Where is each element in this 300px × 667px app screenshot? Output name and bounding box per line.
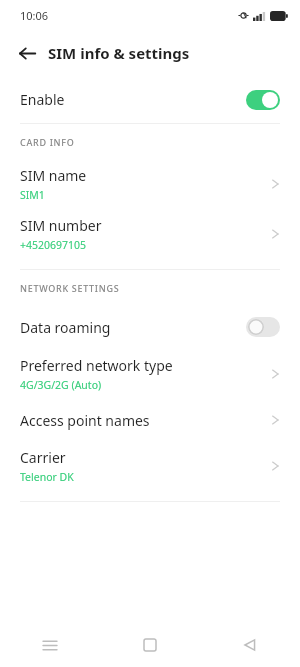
button[interactable]: Recent apps [0,623,100,667]
button[interactable]: Data roaming toggle, off [246,317,280,337]
staticText: SIM name [20,166,87,185]
button[interactable]: Back [200,623,300,667]
staticText: CARD INFO [20,136,75,148]
button[interactable]: Enable [0,76,300,123]
staticText: SIM1 [20,188,45,202]
staticText: NETWORK SETTINGS [20,282,120,294]
button[interactable]: SIM number [0,209,300,259]
staticText: Data roaming [20,318,111,337]
button[interactable]: Data roaming [0,305,300,349]
staticText: +4520697105 [20,238,87,252]
button[interactable]: Enable toggle, on [246,90,280,110]
staticText: SIM info & settings [48,43,190,63]
button[interactable]: Preferred network type [0,349,300,399]
button[interactable]: SIM name [0,159,300,209]
button[interactable]: Access point names [0,399,300,441]
button[interactable]: Back [13,39,41,67]
button[interactable]: Home [100,623,200,667]
staticText: Carrier [20,448,66,467]
staticText: 10:06 [20,8,49,23]
button[interactable]: Carrier [0,441,300,491]
staticText: 4G/3G/2G (Auto) [20,378,102,392]
staticText: SIM number [20,216,102,235]
staticText: Access point names [20,411,150,430]
staticText: Preferred network type [20,356,173,375]
staticText: Enable [20,90,65,109]
staticText: Telenor DK [20,470,74,484]
